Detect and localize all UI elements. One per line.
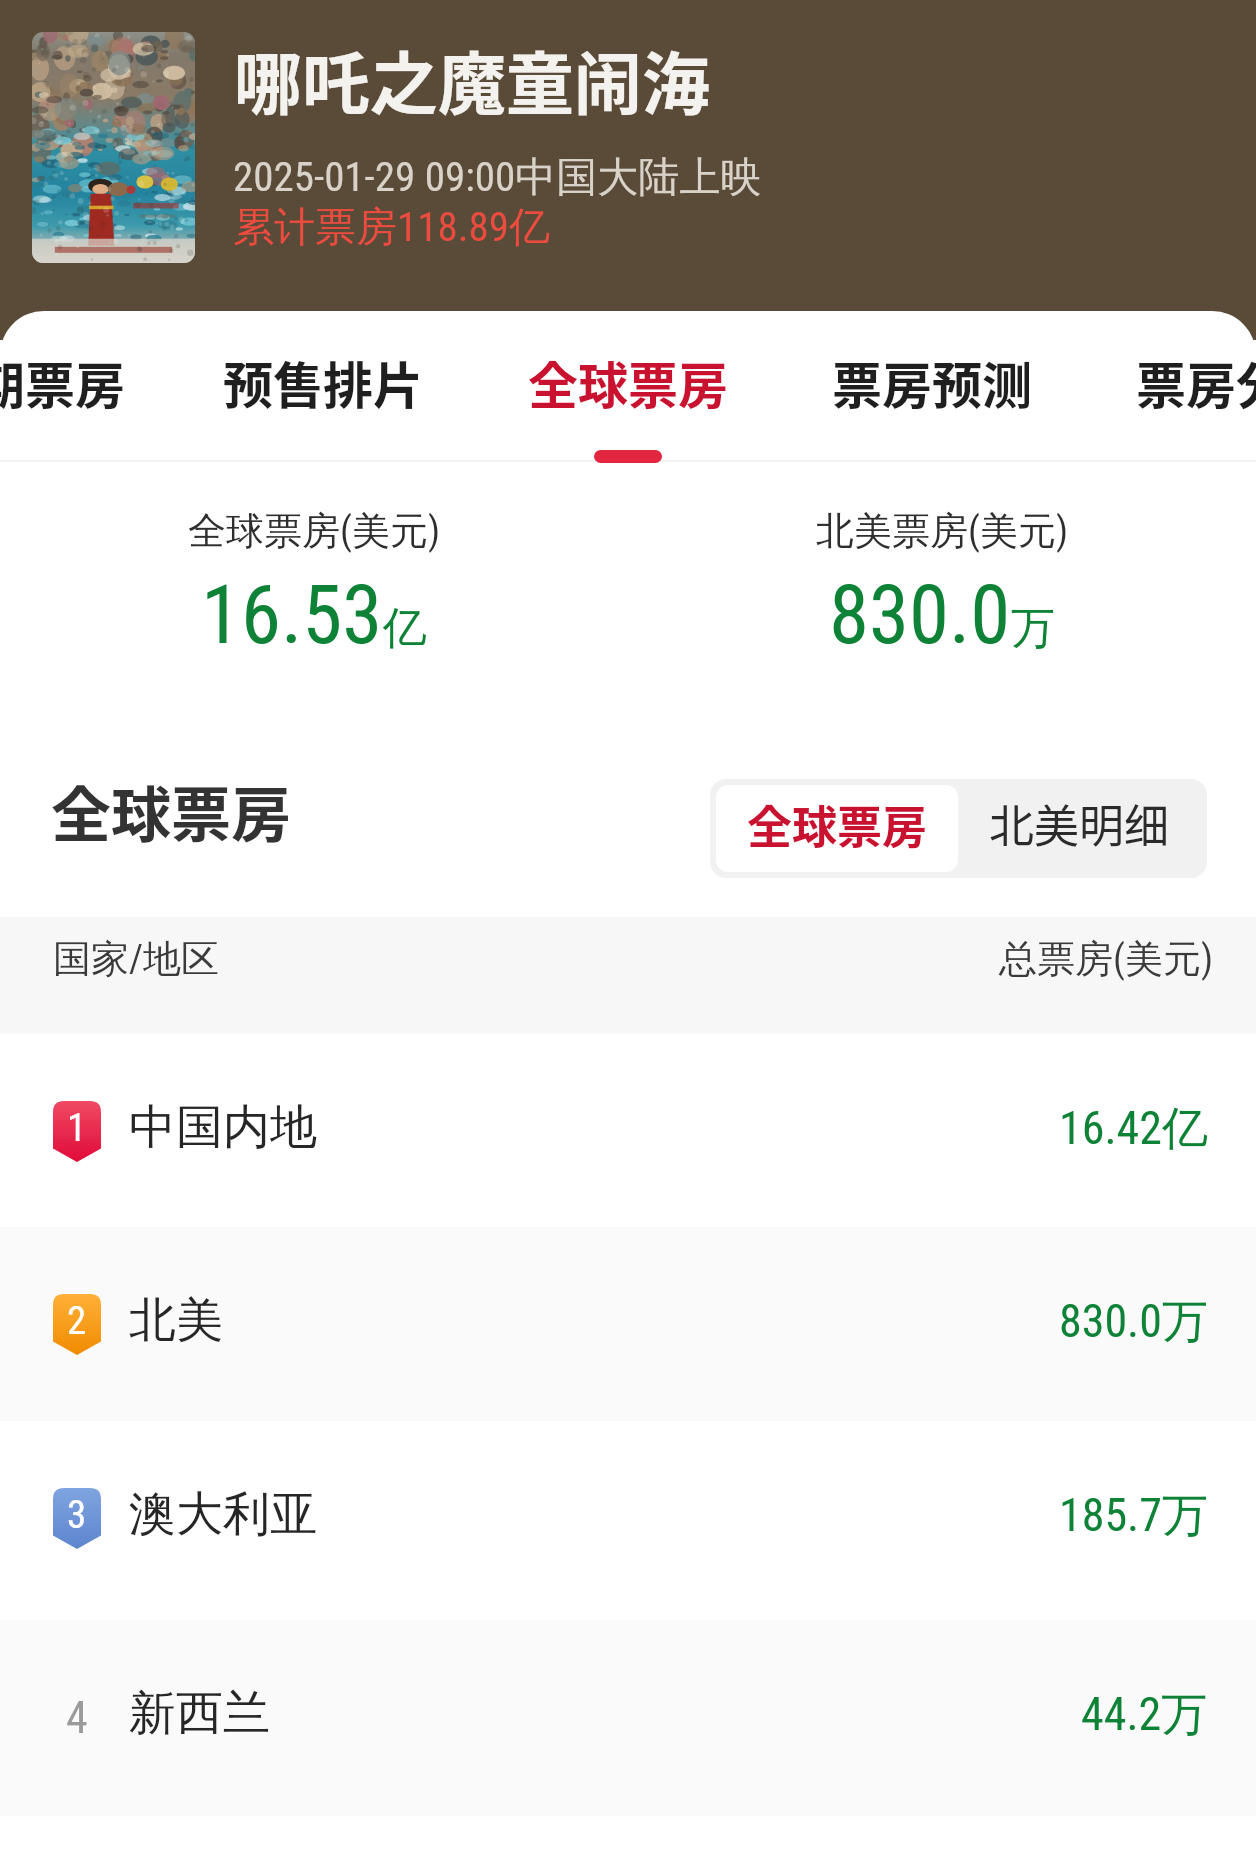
button[interactable]: 全球票房 [478, 311, 778, 460]
button[interactable]: 全球票房 [716, 785, 958, 872]
staticText: 新西兰 [129, 1684, 270, 1743]
button[interactable]: 北美明细 [958, 785, 1201, 872]
button[interactable]: 4 [0, 1620, 1256, 1815]
staticText: 16.53 [201, 568, 383, 663]
staticText: 44.2万 [1081, 1686, 1208, 1744]
staticText: 北美 [129, 1291, 223, 1350]
staticText: 830.0 [829, 568, 1011, 663]
staticText: 2 [67, 1298, 87, 1344]
button[interactable]: 2 [0, 1227, 1256, 1422]
button[interactable]: 电影海报 哪吒之魔童闹海 [0, 0, 1256, 300]
staticText: 1 [67, 1105, 87, 1151]
staticText: 票房分析 [1136, 346, 1256, 418]
staticText: 国家/地区 [53, 935, 220, 983]
staticText: 澳大利亚 [129, 1485, 317, 1544]
staticText: 全球票房 [51, 767, 291, 854]
button[interactable]: 票房分析 [1086, 311, 1256, 460]
staticText: 全球票房 [747, 792, 928, 857]
other: 电影海报 哪吒之魔童闹海 [32, 32, 195, 263]
staticText: 3 [67, 1492, 87, 1538]
staticText: 185.7万 [1059, 1487, 1208, 1545]
staticText: 近期票房 [0, 346, 125, 418]
staticText: 万 [1011, 601, 1055, 656]
staticText: 累计票房118.89亿 [233, 202, 551, 254]
staticText: 830.0万 [1059, 1293, 1208, 1351]
staticText: 北美明细 [989, 791, 1170, 856]
staticText: 总票房(美元) [999, 935, 1214, 983]
staticText: 4 [66, 1692, 88, 1744]
staticText: 2025-01-29 09:00中国大陆上映 [233, 152, 762, 204]
button[interactable]: 3 [0, 1421, 1256, 1616]
button[interactable]: 票房预测 [782, 311, 1082, 460]
button[interactable]: 1 [0, 1034, 1256, 1229]
staticText: 票房预测 [832, 346, 1032, 418]
staticText: 哪吒之魔童闹海 [234, 30, 711, 128]
staticText: 全球票房 [528, 346, 728, 418]
button[interactable]: 预售排片 [173, 311, 473, 460]
staticText: 全球票房(美元) [188, 507, 441, 555]
staticText: 亿 [383, 601, 427, 656]
staticText: 中国内地 [129, 1098, 317, 1157]
staticText: 北美票房(美元) [816, 507, 1069, 555]
staticText: 16.42亿 [1059, 1100, 1208, 1158]
button[interactable]: 近期票房 [0, 311, 175, 460]
staticText: 预售排片 [223, 346, 423, 418]
